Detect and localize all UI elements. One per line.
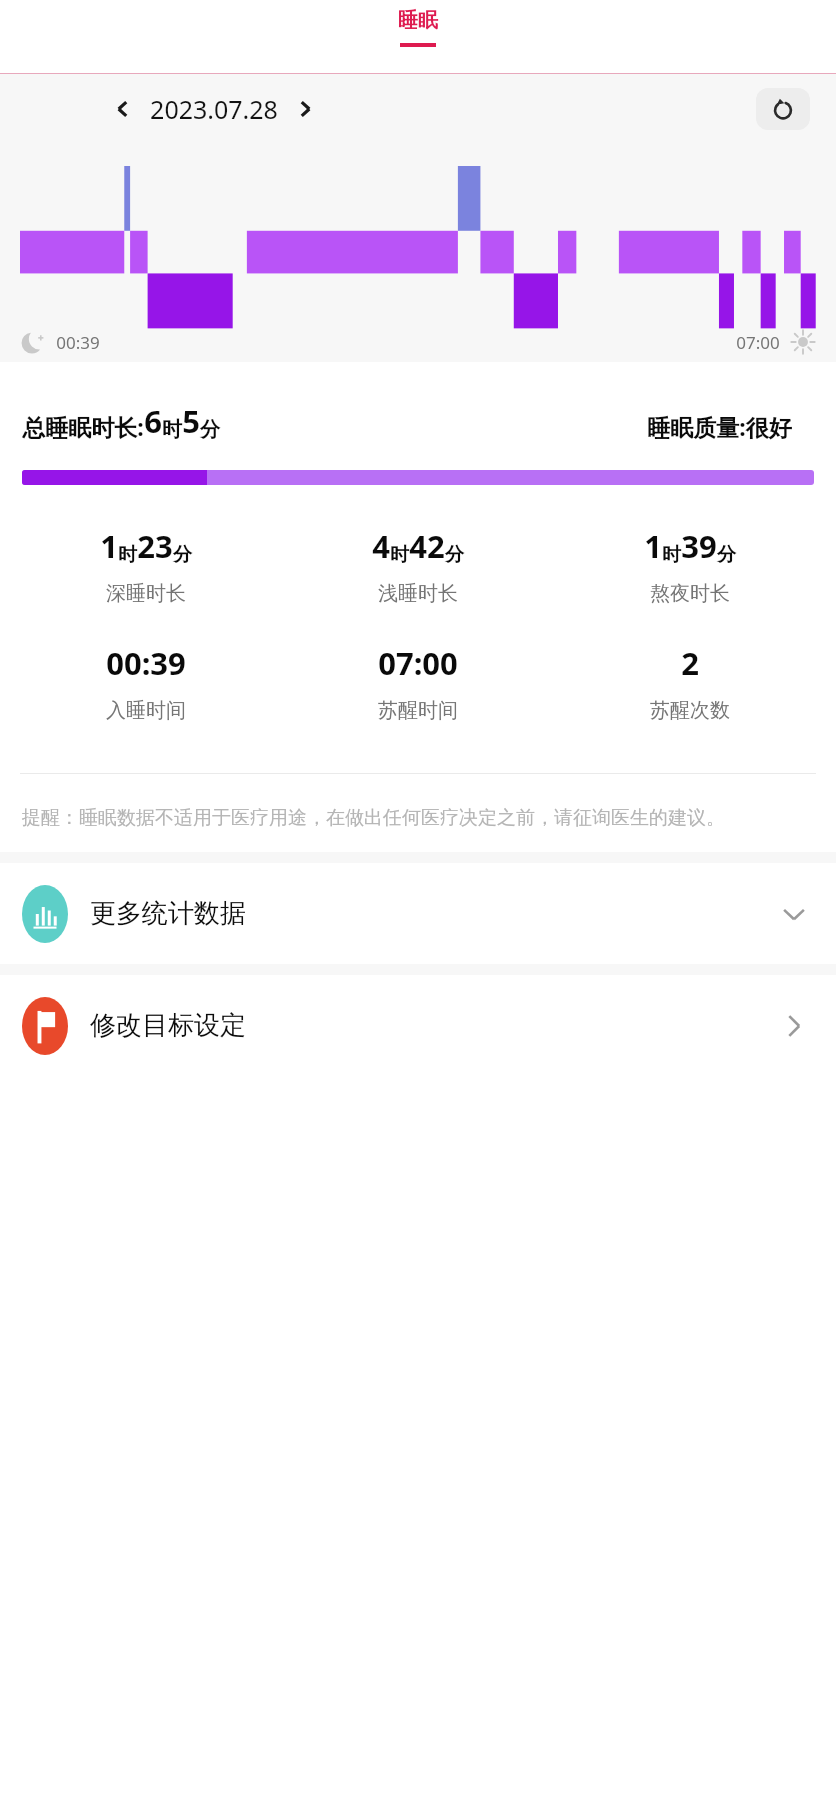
staticText: 07:00 (378, 642, 458, 684)
button[interactable]: 更多统计数据 (0, 863, 836, 964)
staticText: 4 (372, 525, 390, 567)
staticText: 睡眠 (398, 8, 438, 33)
staticText: 苏醒时间 (378, 698, 458, 723)
staticText: 42 (409, 525, 445, 567)
button[interactable]: Next day (290, 94, 320, 124)
staticText: 分 (173, 543, 192, 567)
button[interactable]: Previous day (108, 94, 138, 124)
button[interactable]: 睡眠 (398, 0, 438, 47)
staticText: 00:39 (106, 642, 186, 684)
staticText: 07:00 (736, 331, 780, 354)
staticText: 1 (644, 525, 662, 567)
staticText: 提醒：睡眠数据不适用于医疗用途，在做出任何医疗决定之前，请征询医生的建议。 (22, 806, 725, 830)
staticText: 00:39 (56, 331, 100, 354)
staticText: 苏醒次数 (650, 698, 730, 723)
staticText: 39 (681, 525, 717, 567)
staticText: 时 (390, 543, 409, 567)
staticText: 时 (162, 417, 182, 442)
staticText: 深睡时长 (106, 581, 186, 606)
staticText: 分 (717, 543, 736, 567)
staticText: 时 (118, 543, 137, 567)
staticText: 时 (662, 543, 681, 567)
staticText: 5 (182, 400, 200, 442)
staticText: 更多统计数据 (90, 897, 246, 930)
staticText: 2 (681, 642, 699, 684)
staticText: 修改目标设定 (90, 1009, 246, 1042)
staticText: 23 (137, 525, 173, 567)
button[interactable]: Refresh (756, 88, 810, 130)
staticText: 睡眠质量:很好 (647, 411, 792, 442)
staticText: 总睡眠时长: (22, 411, 144, 442)
staticText: 2023.07.28 (150, 92, 278, 126)
staticText: 分 (200, 417, 220, 442)
staticText: 入睡时间 (106, 698, 186, 723)
button[interactable]: 修改目标设定 (0, 975, 836, 1076)
staticText: 浅睡时长 (378, 581, 458, 606)
staticText: 6 (144, 400, 162, 442)
staticText: 熬夜时长 (650, 581, 730, 606)
staticText: 1 (100, 525, 118, 567)
staticText: 分 (445, 543, 464, 567)
